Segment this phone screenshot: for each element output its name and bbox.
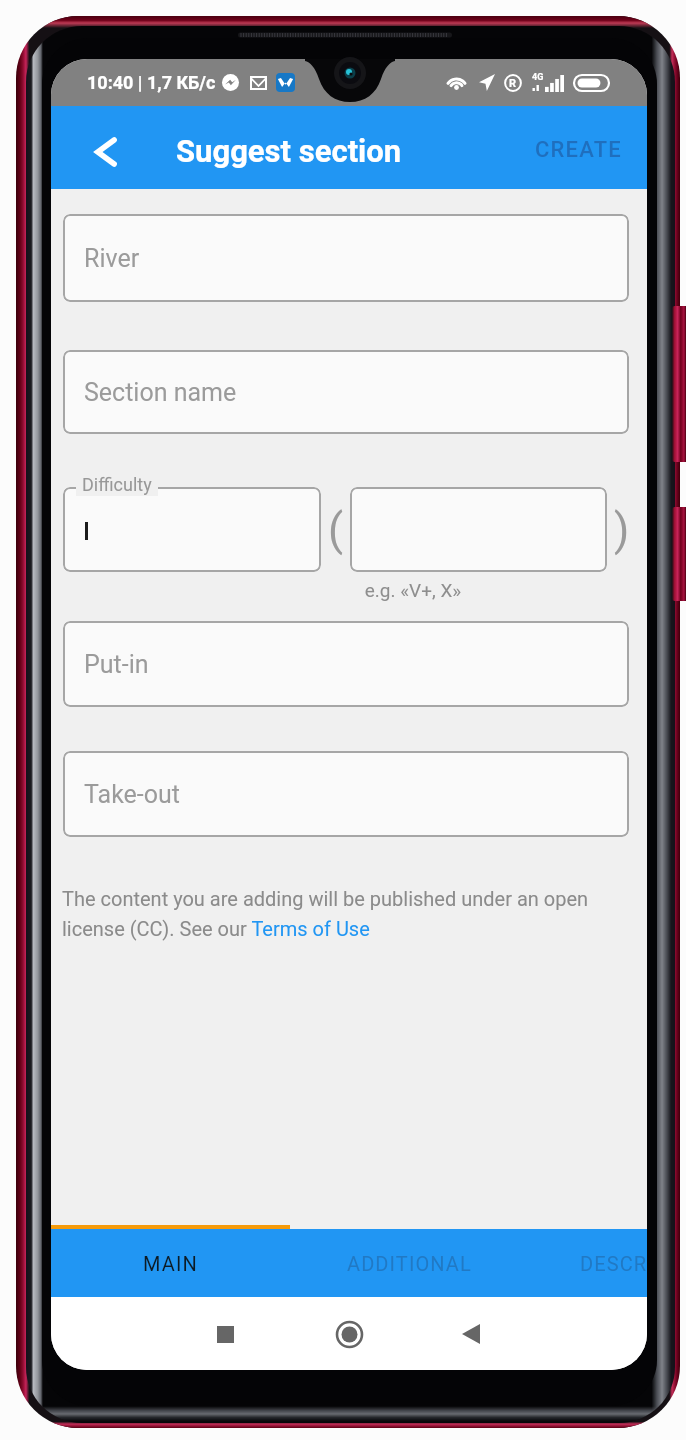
button[interactable]: DESCRIPTION [529,1229,647,1297]
staticText: e.g. «V+, X» [313,579,513,601]
button[interactable] [63,487,321,572]
staticText: R [509,77,517,90]
staticText: MAIN [143,1252,198,1275]
button[interactable]: Take-out [63,751,629,837]
button[interactable]: ADDITIONAL [290,1229,529,1297]
staticText: ( [328,504,344,556]
button[interactable]: Section name [63,350,629,434]
button[interactable]: Recents [197,1306,253,1362]
button[interactable]: Home [321,1306,377,1362]
staticText: DESCRIPTION [580,1252,647,1275]
button[interactable]: River [63,214,629,302]
staticText: River [84,244,140,273]
staticText: 4G [532,72,544,83]
button[interactable]: Back [443,1306,499,1362]
button[interactable]: Back [77,124,133,180]
staticText: ) [614,504,630,556]
button[interactable] [350,487,607,572]
button[interactable]: MAIN [51,1229,290,1297]
staticText: Difficulty [82,474,152,495]
staticText: The content you are adding will be publi… [62,887,602,941]
staticText: Put-in [84,650,149,679]
staticText: CREATE [535,137,622,163]
staticText: Suggest section [176,133,402,169]
button[interactable]: CREATE [521,121,636,179]
staticText: Section name [84,378,237,407]
staticText: Take-out [84,780,180,809]
staticText: 10:40 | 1,7 КБ/c [87,72,216,93]
staticText: ADDITIONAL [347,1252,472,1275]
button[interactable]: Put-in [63,621,629,707]
